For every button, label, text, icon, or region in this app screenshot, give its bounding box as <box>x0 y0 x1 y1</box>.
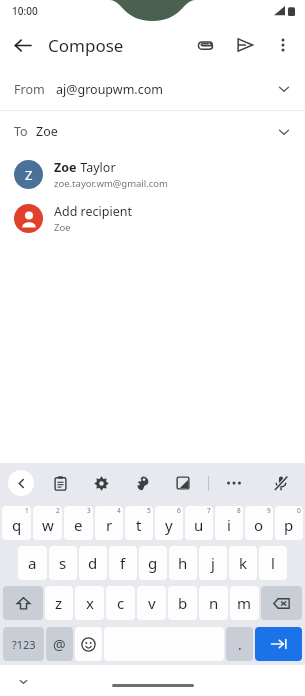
button[interactable]: c <box>106 586 135 620</box>
button[interactable]: @ <box>46 627 73 661</box>
button[interactable]: b <box>168 586 197 620</box>
staticText: 10:00 <box>12 4 38 18</box>
staticText: 9 <box>267 506 271 515</box>
staticText: p <box>284 515 294 535</box>
button[interactable]: Attach file <box>185 25 225 65</box>
staticText: 8 <box>237 506 241 515</box>
staticText: x <box>86 593 94 613</box>
staticText: u <box>194 515 204 535</box>
button[interactable]: r <box>95 506 123 540</box>
staticText: c <box>117 593 125 613</box>
button[interactable]: Voice input off <box>269 471 293 495</box>
button[interactable]: From <box>0 68 305 110</box>
staticText: l <box>271 553 275 573</box>
button[interactable]: g <box>139 546 167 580</box>
button[interactable]: Backspace <box>261 586 302 620</box>
button[interactable]: Hide keyboard <box>12 670 34 692</box>
button[interactable]: Z <box>0 152 305 196</box>
staticText: n <box>209 593 219 613</box>
button[interactable]: Clipboard <box>48 471 72 495</box>
button[interactable]: d <box>79 546 107 580</box>
button[interactable]: Themes <box>130 471 154 495</box>
button[interactable]: m <box>230 586 259 620</box>
staticText: 1 <box>25 506 29 515</box>
staticText: e <box>74 515 83 535</box>
staticText: s <box>59 553 67 573</box>
button[interactable]: Send <box>225 25 265 65</box>
button[interactable]: a <box>18 546 47 580</box>
staticText: y <box>165 515 173 535</box>
button[interactable]: z <box>45 586 73 620</box>
staticText: z <box>55 593 63 613</box>
staticText: w <box>42 515 54 535</box>
button[interactable]: x <box>75 586 104 620</box>
staticText: 3 <box>87 506 91 515</box>
button[interactable]: n <box>199 586 228 620</box>
staticText: From <box>14 81 45 98</box>
staticText: a <box>28 553 37 573</box>
button[interactable]: v <box>137 586 166 620</box>
staticText: o <box>254 515 264 535</box>
button[interactable]: t <box>125 506 153 540</box>
staticText: m <box>237 593 252 613</box>
button[interactable]: u <box>185 506 213 540</box>
staticText: i <box>227 515 231 535</box>
button[interactable]: ?123 <box>3 627 44 661</box>
button[interactable]: To <box>0 111 305 152</box>
staticText: 2 <box>56 506 60 515</box>
button[interactable]: More <box>222 471 246 495</box>
staticText: Add recipient <box>54 203 133 220</box>
staticText: Z <box>25 166 33 184</box>
button[interactable]: Resize keyboard <box>171 471 195 495</box>
button[interactable]: . <box>226 627 253 661</box>
staticText: v <box>148 593 156 613</box>
staticText: ?123 <box>12 637 36 652</box>
button[interactable]: Settings <box>89 471 113 495</box>
staticText: q <box>12 515 22 535</box>
staticText: h <box>178 553 188 573</box>
button[interactable]: k <box>229 546 257 580</box>
button[interactable]: Expand toolbar <box>8 470 34 496</box>
staticText: d <box>88 553 98 573</box>
button[interactable]: Shift <box>3 586 43 620</box>
staticText: @ <box>53 635 66 654</box>
button[interactable]: e <box>64 506 93 540</box>
button[interactable]: q <box>2 506 31 540</box>
staticText: zoe.tayor.wm@gmail.com <box>54 177 169 190</box>
staticText: k <box>239 553 248 573</box>
staticText: t <box>136 515 142 535</box>
staticText: Zoe <box>54 159 77 176</box>
staticText: To <box>14 123 28 140</box>
staticText: 5 <box>147 506 151 515</box>
button[interactable]: i <box>215 506 243 540</box>
button[interactable]: Add recipient <box>0 196 305 240</box>
staticText: b <box>178 593 188 613</box>
button[interactable]: w <box>33 506 62 540</box>
staticText: Zoe <box>54 221 71 234</box>
button[interactable]: j <box>199 546 227 580</box>
staticText: g <box>148 553 158 573</box>
button[interactable]: Next field <box>255 627 302 661</box>
staticText: aj@groupwm.com <box>56 81 163 98</box>
button[interactable]: f <box>109 546 137 580</box>
staticText: r <box>106 515 113 535</box>
staticText: 0 <box>297 506 301 515</box>
staticText: Taylor <box>77 159 116 176</box>
button[interactable]: h <box>169 546 197 580</box>
staticText: Compose <box>48 34 124 57</box>
staticText: Zoe <box>36 123 58 140</box>
button[interactable]: More options <box>265 27 301 63</box>
button[interactable]: o <box>245 506 273 540</box>
button[interactable]: Back <box>0 23 44 67</box>
staticText: . <box>238 635 242 654</box>
staticText: 6 <box>177 506 181 515</box>
button[interactable]: l <box>259 546 287 580</box>
button[interactable]: y <box>155 506 183 540</box>
button[interactable]: p <box>275 506 303 540</box>
button[interactable]: Emoji <box>75 627 102 661</box>
button[interactable]: s <box>49 546 77 580</box>
staticText: 4 <box>117 506 121 515</box>
staticText: 7 <box>207 506 211 515</box>
staticText: f <box>120 553 126 573</box>
